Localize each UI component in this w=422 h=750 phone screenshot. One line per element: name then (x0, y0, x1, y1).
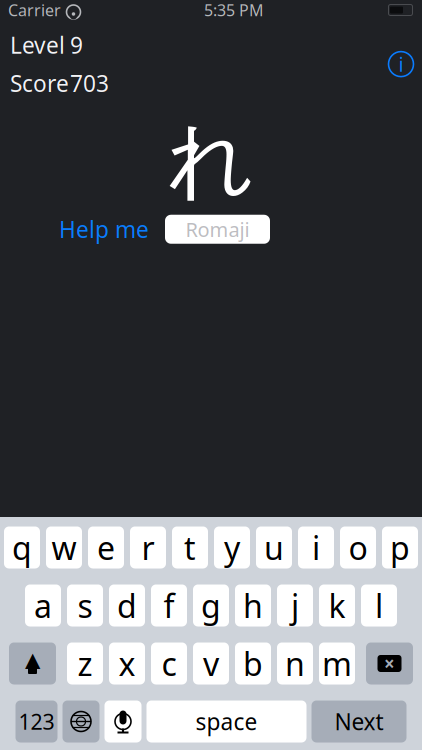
button[interactable]: f (151, 584, 187, 626)
staticText: n (285, 642, 305, 685)
staticText: j (291, 584, 299, 627)
staticText: Carrier (8, 0, 61, 21)
button[interactable]: z (67, 642, 103, 684)
button[interactable]: w (46, 526, 82, 568)
staticText: r (141, 526, 154, 569)
button[interactable]: m (319, 642, 355, 684)
button[interactable]: l (361, 584, 397, 626)
button[interactable]: c (151, 642, 187, 684)
button[interactable]: y (214, 526, 250, 568)
button[interactable]: q (4, 526, 40, 568)
button[interactable]: e (88, 526, 124, 568)
staticText: れ (167, 109, 254, 214)
button[interactable]: n (277, 642, 313, 684)
button[interactable]: p (382, 526, 418, 568)
button[interactable]: Next keyboard (62, 700, 99, 742)
button[interactable]: a (25, 584, 61, 626)
button[interactable]: b (235, 642, 271, 684)
button[interactable]: o (340, 526, 376, 568)
staticText: u (264, 526, 284, 569)
staticText: Romaji (185, 216, 249, 243)
staticText: Help me (59, 214, 149, 244)
button[interactable]: 123 (15, 700, 57, 742)
staticText: 703 (70, 68, 109, 98)
staticText: q (12, 526, 32, 569)
staticText: × (384, 651, 395, 676)
button[interactable]: t (172, 526, 208, 568)
staticText: i (312, 526, 320, 569)
staticText: Score (10, 68, 69, 98)
button[interactable]: Dictate (104, 700, 141, 742)
staticText: k (328, 584, 345, 627)
staticText: x (118, 642, 135, 685)
staticText: s (77, 584, 92, 627)
staticText: h (243, 584, 263, 627)
staticText: space (195, 706, 257, 736)
button[interactable]: u (256, 526, 292, 568)
staticText: o (348, 526, 367, 569)
staticText: c (161, 642, 176, 685)
staticText: Next (334, 706, 383, 736)
button[interactable]: h (235, 584, 271, 626)
staticText: z (77, 642, 92, 685)
button[interactable]: j (277, 584, 313, 626)
button[interactable]: Info (379, 42, 422, 86)
staticText: t (184, 526, 196, 569)
button[interactable]: Next (311, 700, 406, 742)
staticText: m (322, 642, 352, 685)
staticText: d (117, 584, 137, 627)
staticText: 5:35 PM (204, 0, 264, 21)
button[interactable]: Shift (9, 642, 56, 684)
staticText: p (390, 526, 410, 569)
button[interactable]: v (193, 642, 229, 684)
staticText: y (224, 526, 240, 569)
staticText: l (375, 584, 383, 627)
staticText: g (201, 584, 221, 627)
button[interactable]: i (298, 526, 334, 568)
staticText: a (34, 584, 52, 627)
staticText: b (243, 642, 263, 685)
button[interactable]: r (130, 526, 166, 568)
staticText: ▲ (25, 648, 40, 671)
staticText: w (51, 526, 76, 569)
staticText: v (203, 642, 219, 685)
staticText: i (398, 51, 403, 77)
button[interactable]: k (319, 584, 355, 626)
button[interactable]: Help me (51, 208, 157, 250)
button[interactable]: space (146, 700, 306, 742)
button[interactable]: g (193, 584, 229, 626)
button[interactable]: Delete (366, 642, 413, 684)
button[interactable]: x (109, 642, 145, 684)
button[interactable]: d (109, 584, 145, 626)
button[interactable]: s (67, 584, 103, 626)
staticText: Level (10, 30, 65, 60)
staticText: f (163, 584, 174, 627)
staticText: e (97, 526, 115, 569)
staticText: 123 (18, 707, 54, 736)
staticText: 9 (70, 30, 83, 60)
